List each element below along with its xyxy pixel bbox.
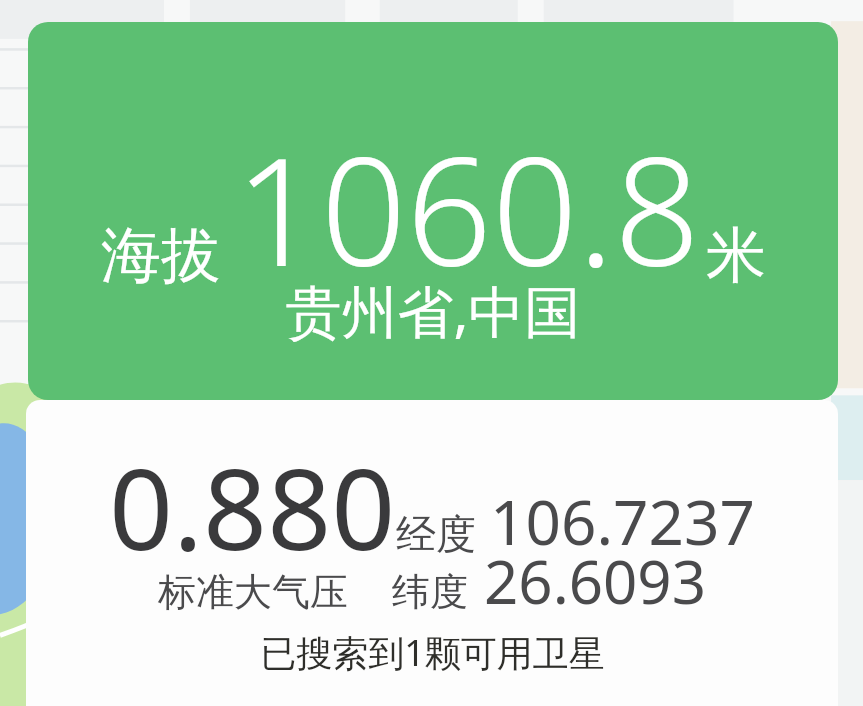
button[interactable]: 海拔: [28, 22, 838, 400]
staticText: 106.7237: [490, 479, 755, 563]
staticText: 0.880: [109, 430, 396, 583]
staticText: 标准大气压: [158, 568, 348, 616]
staticText: 贵州省,中国: [285, 272, 581, 348]
staticText: 经度: [396, 509, 476, 559]
staticText: 米: [706, 218, 766, 294]
staticText: 纬度: [392, 568, 468, 616]
staticText: 1060.8: [235, 106, 700, 310]
button[interactable]: 0.880: [26, 400, 838, 706]
staticText: 26.6093: [484, 540, 706, 622]
staticText: 海拔: [101, 218, 221, 294]
staticText: 已搜索到1颗可用卫星: [260, 628, 605, 677]
